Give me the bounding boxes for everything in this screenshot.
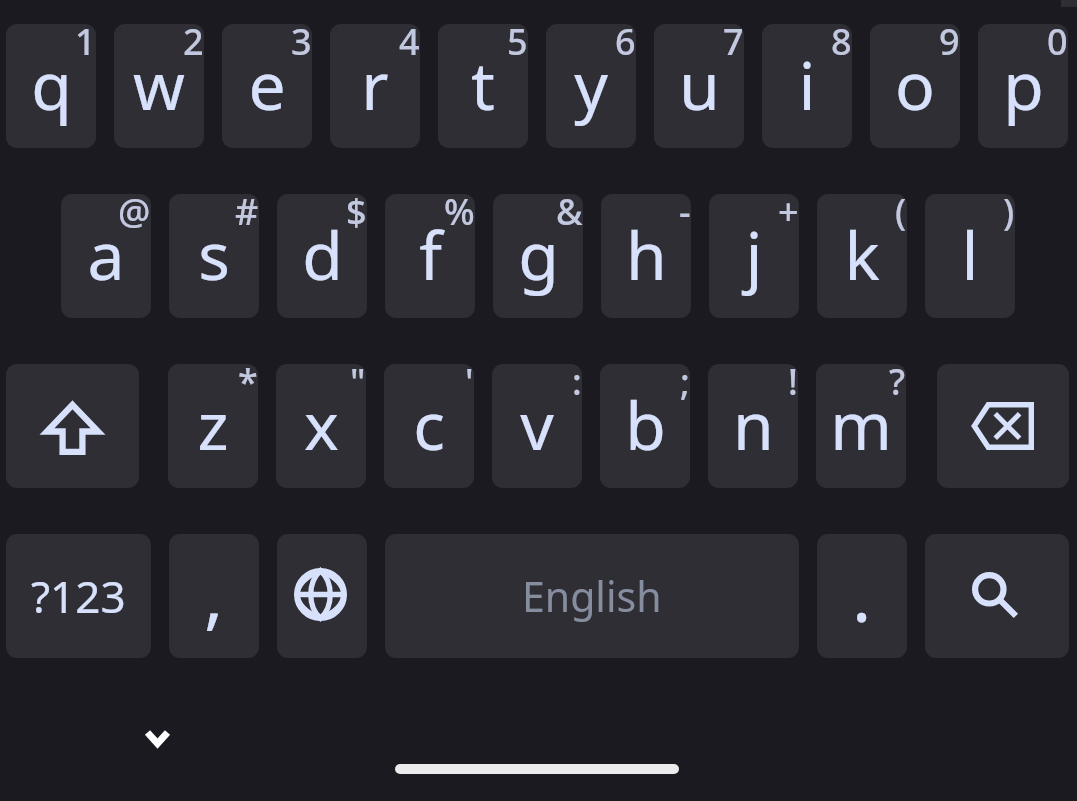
button[interactable]: v bbox=[492, 364, 582, 488]
button[interactable]: b bbox=[600, 364, 690, 488]
button[interactable]: t bbox=[438, 24, 528, 148]
button[interactable]: ?123 bbox=[6, 534, 151, 658]
button[interactable]: Backspace bbox=[937, 364, 1069, 488]
staticText: 7 bbox=[723, 24, 744, 66]
button[interactable]: q bbox=[6, 24, 96, 148]
staticText: s bbox=[198, 209, 230, 299]
button[interactable]: d bbox=[277, 194, 367, 318]
button[interactable]: z bbox=[168, 364, 258, 488]
button[interactable]: g bbox=[493, 194, 583, 318]
staticText: r bbox=[361, 39, 389, 129]
staticText: ; bbox=[680, 364, 690, 406]
staticText: ! bbox=[788, 364, 798, 406]
staticText: m bbox=[830, 379, 892, 469]
button[interactable]: c bbox=[384, 364, 474, 488]
staticText: t bbox=[471, 39, 495, 129]
button[interactable]: . bbox=[817, 534, 907, 658]
staticText: English bbox=[522, 568, 662, 624]
staticText: c bbox=[413, 379, 445, 469]
staticText: g bbox=[518, 209, 559, 299]
staticText: 9 bbox=[939, 24, 960, 66]
button[interactable]: f bbox=[385, 194, 475, 318]
staticText: n bbox=[733, 379, 774, 469]
staticText: ) bbox=[1003, 194, 1015, 236]
staticText: ?123 bbox=[31, 566, 126, 626]
button[interactable]: y bbox=[546, 24, 636, 148]
button[interactable]: s bbox=[169, 194, 259, 318]
button[interactable]: l bbox=[925, 194, 1015, 318]
button[interactable]: m bbox=[816, 364, 906, 488]
staticText: 0 bbox=[1047, 24, 1068, 66]
staticText: w bbox=[133, 39, 185, 129]
staticText: @ bbox=[118, 194, 151, 236]
staticText: - bbox=[679, 194, 691, 236]
button[interactable]: e bbox=[222, 24, 312, 148]
staticText: : bbox=[572, 364, 582, 406]
staticText: a bbox=[87, 209, 125, 299]
staticText: ' bbox=[465, 364, 474, 406]
staticText: ? bbox=[889, 364, 906, 406]
staticText: $ bbox=[346, 194, 367, 236]
button[interactable]: n bbox=[708, 364, 798, 488]
button[interactable]: Shift bbox=[6, 364, 139, 488]
staticText: y bbox=[574, 39, 608, 129]
staticText: b bbox=[625, 379, 666, 469]
staticText: 3 bbox=[291, 24, 312, 66]
button[interactable]: r bbox=[330, 24, 420, 148]
staticText: z bbox=[197, 379, 229, 469]
staticText: , bbox=[204, 545, 224, 643]
staticText: 2 bbox=[183, 24, 204, 66]
staticText: v bbox=[520, 379, 554, 469]
staticText: d bbox=[302, 209, 343, 299]
button[interactable]: a bbox=[61, 194, 151, 318]
button[interactable]: p bbox=[978, 24, 1068, 148]
button[interactable]: i bbox=[762, 24, 852, 148]
button[interactable]: o bbox=[870, 24, 960, 148]
staticText: 5 bbox=[507, 24, 528, 66]
button[interactable]: k bbox=[817, 194, 907, 318]
button[interactable]: x bbox=[276, 364, 366, 488]
button[interactable]: Hide keyboard bbox=[117, 698, 197, 778]
staticText: o bbox=[895, 39, 935, 129]
staticText: f bbox=[419, 209, 442, 299]
staticText: 8 bbox=[831, 24, 852, 66]
staticText: h bbox=[626, 209, 667, 299]
staticText: * bbox=[238, 364, 258, 406]
button[interactable]: j bbox=[709, 194, 799, 318]
staticText: . bbox=[852, 545, 872, 643]
button[interactable]: w bbox=[114, 24, 204, 148]
staticText: j bbox=[745, 209, 763, 299]
button[interactable]: h bbox=[601, 194, 691, 318]
staticText: x bbox=[304, 379, 339, 469]
button[interactable]: , bbox=[169, 534, 259, 658]
button[interactable]: u bbox=[654, 24, 744, 148]
staticText: % bbox=[444, 194, 475, 236]
staticText: ( bbox=[895, 194, 907, 236]
staticText: p bbox=[1003, 39, 1044, 129]
staticText: i bbox=[798, 39, 816, 129]
staticText: & bbox=[556, 194, 583, 236]
staticText: e bbox=[248, 39, 286, 129]
staticText: k bbox=[844, 209, 880, 299]
staticText: + bbox=[778, 194, 799, 236]
staticText: l bbox=[961, 209, 979, 299]
staticText: q bbox=[31, 39, 72, 129]
staticText: # bbox=[235, 194, 259, 236]
button[interactable]: English bbox=[385, 534, 799, 658]
button[interactable]: Search bbox=[925, 534, 1069, 658]
staticText: 4 bbox=[399, 24, 420, 66]
staticText: " bbox=[350, 364, 366, 406]
staticText: 1 bbox=[75, 24, 96, 66]
staticText: 6 bbox=[615, 24, 636, 66]
staticText: u bbox=[679, 39, 720, 129]
button[interactable]: Change language bbox=[277, 534, 367, 658]
